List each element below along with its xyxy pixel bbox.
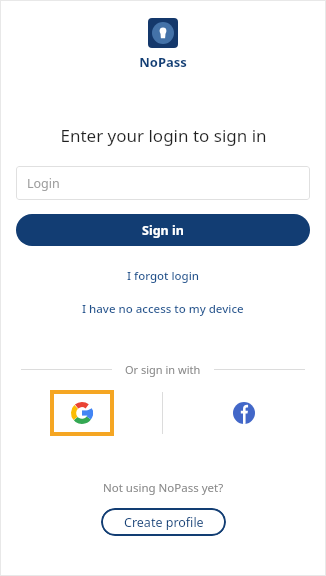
button[interactable]: Create profile: [101, 508, 226, 536]
staticText: I have no access to my device: [82, 301, 244, 317]
staticText: Not using NoPass yet?: [103, 480, 224, 496]
staticText: Or sign in with: [125, 362, 201, 377]
staticText: Sign in: [142, 222, 184, 239]
button[interactable]: Login: [16, 166, 310, 200]
button[interactable]: I forgot login: [117, 265, 210, 287]
staticText: Enter your login to sign in: [60, 124, 267, 147]
button[interactable]: Sign in: [16, 214, 310, 246]
button[interactable]: Sign in with Google: [54, 394, 110, 432]
button[interactable]: Sign in with Facebook: [233, 402, 255, 424]
staticText: Login: [27, 175, 60, 192]
staticText: I forgot login: [127, 268, 200, 284]
button[interactable]: I have no access to my device: [72, 298, 254, 320]
staticText: Create profile: [124, 514, 204, 531]
staticText: NoPass: [139, 53, 187, 71]
